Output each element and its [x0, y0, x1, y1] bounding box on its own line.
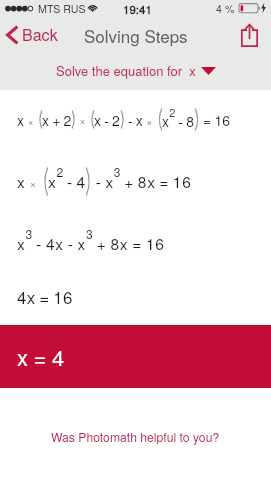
staticText: x2 - 4 [48, 163, 86, 193]
staticText: - x3 + 8x = 16 [92, 163, 192, 193]
staticText: x2 - 8 [162, 104, 195, 131]
button[interactable]: Solve the equation for x [0, 52, 271, 88]
button[interactable]: Share [231, 19, 271, 51]
staticText: x × [17, 110, 38, 130]
staticText: = 16 [200, 110, 231, 130]
staticText: Back [22, 23, 58, 46]
staticText: Solving Steps [84, 23, 188, 47]
staticText: x × [17, 170, 42, 192]
staticText: MTS RUS [38, 1, 86, 16]
staticText: x - 2 [94, 110, 121, 130]
staticText: 19:41 [123, 1, 152, 17]
staticText: x + 2 [42, 110, 72, 130]
staticText: - x × [125, 110, 157, 130]
staticText: Solve the equation for x [56, 61, 196, 80]
staticText: x3 - 4x - x3 + 8x = 16 [17, 225, 165, 255]
staticText: × [76, 112, 90, 128]
button[interactable]: Back [0, 18, 66, 51]
staticText: 4 % [216, 1, 235, 16]
staticText: 4x = 16 [17, 284, 73, 308]
button[interactable]: Was Photomath helpful to you? [51, 428, 220, 445]
staticText: x = 4 [17, 341, 65, 373]
